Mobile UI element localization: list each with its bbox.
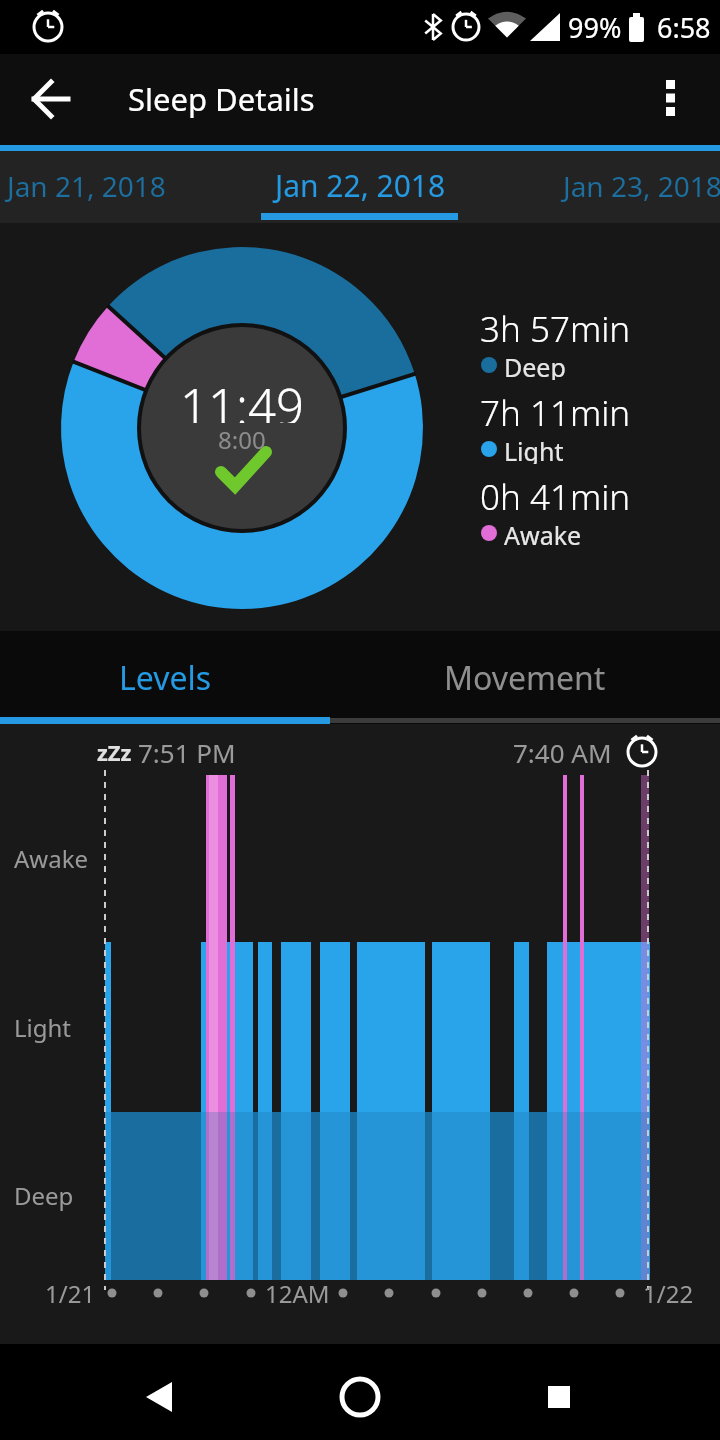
- staticText: 1/22: [643, 1277, 694, 1310]
- staticText: Deep: [504, 350, 566, 380]
- staticText: 99%: [568, 9, 622, 46]
- staticText: Jan 22, 2018: [275, 165, 446, 206]
- staticText: Jan 23, 2018: [563, 167, 720, 205]
- staticText: Movement: [444, 656, 606, 700]
- staticText: 1/21: [45, 1277, 96, 1310]
- staticText: Light: [14, 1011, 72, 1044]
- staticText: 0h 41min: [480, 473, 631, 517]
- staticText: 7:40 AM: [513, 735, 612, 769]
- staticText: 7h 11min: [480, 389, 631, 433]
- staticText: 6:58: [657, 9, 711, 46]
- staticText: Awake: [504, 518, 582, 548]
- staticText: Levels: [119, 656, 212, 700]
- staticText: 11:49: [180, 373, 304, 423]
- staticText: Jan 21, 2018: [7, 167, 166, 205]
- staticText: zZz: [97, 737, 132, 767]
- staticText: Awake: [14, 842, 89, 875]
- staticText: Sleep Details: [128, 78, 315, 120]
- staticText: 12AM: [265, 1277, 330, 1310]
- staticText: 7:51 PM: [138, 735, 236, 769]
- staticText: Deep: [14, 1179, 74, 1212]
- staticText: 8:00: [218, 423, 266, 451]
- staticText: Light: [504, 434, 564, 464]
- staticText: 3h 57min: [480, 305, 631, 349]
